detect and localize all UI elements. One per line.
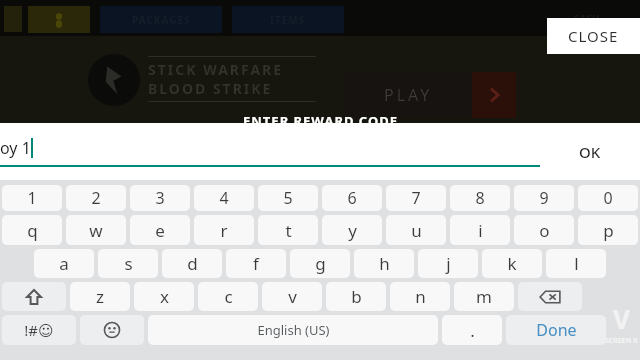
staticText: 9	[539, 187, 549, 209]
staticText: !#☺	[24, 320, 54, 340]
staticText: n	[415, 285, 426, 308]
button[interactable]: q	[2, 215, 62, 245]
button[interactable]: i	[450, 215, 510, 245]
button[interactable]: 9	[514, 185, 574, 211]
button[interactable]: 1	[2, 185, 62, 211]
staticText: t	[285, 219, 292, 242]
staticText: r	[220, 219, 228, 242]
button[interactable]: z	[70, 282, 130, 311]
button[interactable]: f	[226, 249, 286, 278]
button[interactable]: u	[386, 215, 446, 245]
button[interactable]: g	[290, 249, 350, 278]
button[interactable]: j	[418, 249, 478, 278]
staticText: z	[96, 285, 104, 308]
staticText: m	[476, 285, 492, 308]
staticText: oy 1	[0, 137, 31, 159]
staticText: 3	[155, 187, 165, 209]
staticText: s	[124, 252, 133, 275]
button[interactable]: v	[262, 282, 322, 311]
button[interactable]: 5	[258, 185, 318, 211]
staticText: CLOSE	[568, 26, 619, 46]
button[interactable]: 0	[578, 185, 638, 211]
button[interactable]: Emoji	[80, 315, 144, 345]
staticText: b	[351, 285, 362, 308]
staticText: j	[446, 252, 451, 275]
staticText: OK	[579, 142, 601, 162]
staticText: i	[478, 219, 483, 242]
staticText: 7	[411, 187, 421, 209]
button[interactable]: 7	[386, 185, 446, 211]
staticText: e	[155, 219, 165, 242]
button[interactable]: CLOSE	[547, 18, 640, 54]
staticText: p	[603, 219, 614, 242]
staticText: BLOOD STRIKE	[148, 79, 273, 98]
button[interactable]: p	[578, 215, 638, 245]
button[interactable]: x	[134, 282, 194, 311]
staticText: l	[574, 252, 579, 275]
button[interactable]: h	[354, 249, 414, 278]
staticText: 5	[283, 187, 293, 209]
button[interactable]: 6	[322, 185, 382, 211]
button[interactable]: Done	[506, 315, 606, 345]
button[interactable]: 3	[130, 185, 190, 211]
staticText: w	[89, 219, 103, 242]
staticText: y	[348, 219, 357, 242]
staticText: ENTER REWARD CODE	[243, 112, 398, 130]
staticText: SCREEN R	[605, 336, 638, 346]
button[interactable]: .	[442, 315, 502, 345]
staticText: English (US)	[257, 321, 330, 339]
staticText: PLAY	[384, 84, 433, 106]
button[interactable]: 4	[194, 185, 254, 211]
staticText: 4	[219, 187, 229, 209]
staticText: u	[411, 219, 422, 242]
button[interactable]: m	[454, 282, 514, 311]
button[interactable]: y	[322, 215, 382, 245]
staticText: f	[253, 252, 259, 275]
button[interactable]: r	[194, 215, 254, 245]
staticText: 0	[603, 187, 613, 209]
button[interactable]: OK	[540, 123, 640, 180]
staticText: a	[59, 252, 69, 275]
button[interactable]: English (US)	[148, 315, 438, 345]
button[interactable]: PLAY	[344, 72, 516, 118]
button[interactable]	[28, 6, 90, 33]
staticText: x	[160, 285, 169, 308]
button[interactable]: l	[546, 249, 606, 278]
button[interactable]: e	[130, 215, 190, 245]
button[interactable]: !#☺	[2, 315, 76, 345]
staticText: k	[507, 252, 517, 275]
button[interactable]: s	[98, 249, 158, 278]
staticText: 2	[91, 187, 101, 209]
button[interactable]: Shift	[2, 282, 66, 311]
staticText: PACKAGES	[132, 13, 191, 27]
button[interactable]: b	[326, 282, 386, 311]
staticText: ITEMS	[270, 13, 306, 27]
staticText: Done	[536, 319, 577, 341]
staticText: c	[224, 285, 233, 308]
staticText: 1	[27, 187, 37, 209]
button[interactable]: 2	[66, 185, 126, 211]
button[interactable]: d	[162, 249, 222, 278]
staticText: h	[379, 252, 390, 275]
button[interactable]: n	[390, 282, 450, 311]
staticText: g	[315, 252, 326, 275]
staticText: d	[187, 252, 198, 275]
staticText: o	[539, 219, 550, 242]
button[interactable]: c	[198, 282, 258, 311]
staticText: CASH	[573, 12, 600, 26]
button[interactable]: o	[514, 215, 574, 245]
button[interactable]: k	[482, 249, 542, 278]
button[interactable]: a	[34, 249, 94, 278]
button[interactable]: w	[66, 215, 126, 245]
staticText: STICK WARFARE	[148, 60, 284, 79]
staticText: 8	[475, 187, 485, 209]
staticText: .	[470, 319, 475, 342]
staticText: V	[613, 301, 630, 336]
button[interactable]: t	[258, 215, 318, 245]
button[interactable]: Backspace	[518, 282, 582, 311]
button[interactable]: 8	[450, 185, 510, 211]
staticText: 6	[347, 187, 357, 209]
